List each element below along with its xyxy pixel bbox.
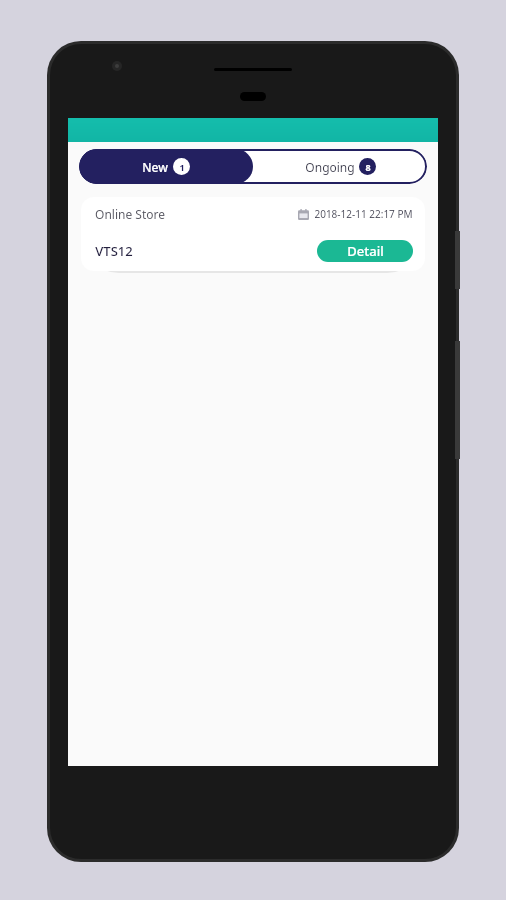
staticText: Ongoing (305, 159, 355, 175)
staticText: Online Store (95, 206, 165, 222)
staticText: 8 (365, 161, 371, 173)
staticText: New (142, 159, 168, 175)
other: Date (298, 209, 309, 220)
staticText: 2018-12-11 22:17 PM (314, 207, 413, 221)
button[interactable]: Ongoing (253, 149, 427, 184)
staticText: Detail (347, 242, 384, 260)
staticText: 1 (179, 161, 185, 173)
staticText: VTS12 (95, 242, 133, 260)
button[interactable]: New (79, 149, 253, 184)
button[interactable]: Online Store (81, 197, 425, 271)
button[interactable]: Detail (317, 240, 413, 262)
